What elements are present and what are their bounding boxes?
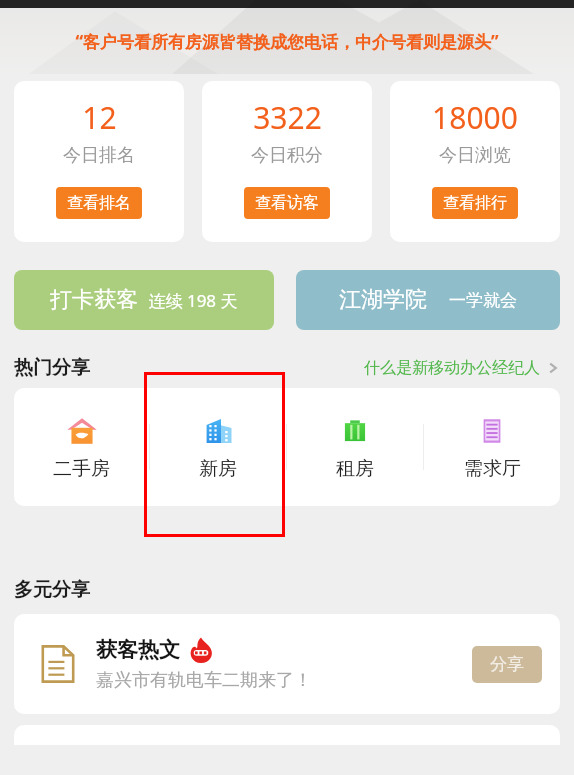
staticText: 18000 — [432, 97, 518, 138]
button[interactable]: 租房 — [287, 414, 423, 481]
staticText: 热门分享 — [14, 356, 90, 380]
staticText: 分享 — [490, 654, 524, 675]
button[interactable]: 查看排名 — [56, 187, 142, 219]
staticText: 什么是新移动办公经纪人 — [364, 358, 540, 378]
staticText: 12 — [82, 97, 117, 138]
staticText: 今日浏览 — [439, 144, 511, 167]
button[interactable]: 18000 — [390, 81, 560, 242]
staticText: 一学就会 — [449, 290, 517, 311]
staticText: “客户号看所有房源皆替换成您电话，中介号看则是源头” — [75, 30, 499, 53]
button[interactable]: 分享 — [472, 646, 542, 683]
staticText: 租房 — [336, 457, 374, 481]
staticText: 获客热文 — [96, 637, 180, 663]
button[interactable]: 查看访客 — [244, 187, 330, 219]
staticText: 江湖学院 — [339, 286, 427, 314]
button[interactable]: 查看排行 — [432, 187, 518, 219]
staticText: 查看排名 — [67, 193, 131, 213]
staticText: 二手房 — [53, 457, 110, 481]
staticText: 3322 — [253, 97, 322, 138]
button[interactable]: 打卡获客 — [14, 270, 274, 330]
staticText: 多元分享 — [14, 578, 90, 602]
button[interactable]: 什么是新移动办公经纪人 — [364, 358, 560, 378]
staticText: 需求厅 — [464, 457, 521, 481]
button[interactable]: 新房 — [150, 414, 286, 481]
staticText: 今日积分 — [251, 144, 323, 167]
staticText: 打卡获客 — [50, 286, 138, 314]
staticText: 查看排行 — [443, 193, 507, 213]
staticText: 查看访客 — [255, 193, 319, 213]
button[interactable]: 江湖学院 — [296, 270, 560, 330]
staticText: 新房 — [199, 457, 237, 481]
staticText: 今日排名 — [63, 144, 135, 167]
button[interactable]: 12 — [14, 81, 184, 242]
button[interactable]: 二手房 — [14, 414, 149, 481]
staticText: 连续 198 天 — [148, 289, 238, 312]
staticText: 嘉兴市有轨电车二期来了！ — [96, 669, 312, 692]
button[interactable]: 需求厅 — [424, 414, 560, 481]
button[interactable]: 获客热文 — [14, 614, 560, 714]
button[interactable]: 3322 — [202, 81, 372, 242]
